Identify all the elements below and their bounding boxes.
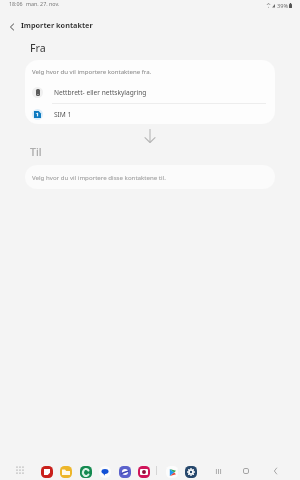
button[interactable]: Phone (79, 465, 93, 479)
staticText: Velg hvor du vil importere kontaktene fr… (32, 67, 152, 75)
staticText: SIM 1 (54, 110, 72, 119)
staticText: man. 27. nov. (26, 0, 60, 7)
button[interactable]: My Files (59, 465, 73, 479)
button[interactable]: All apps (13, 463, 27, 477)
staticText: Til (30, 145, 42, 159)
button[interactable]: Home (237, 462, 255, 480)
staticText: 18:06 (9, 0, 23, 7)
button[interactable]: Velg hvor du vil importere disse kontakt… (25, 165, 275, 189)
button[interactable]: Nettbrett- eller nettskylagring (25, 82, 275, 103)
staticText: Fra (30, 41, 46, 55)
button[interactable]: Back (3, 18, 21, 36)
button[interactable]: Instagram (137, 465, 151, 479)
button[interactable]: Internet (118, 465, 132, 479)
staticText: Velg hvor du vil importere disse kontakt… (32, 173, 166, 181)
button[interactable]: Documents (40, 465, 54, 479)
button[interactable]: Settings (184, 465, 198, 479)
staticText: 39% (277, 2, 289, 8)
button[interactable]: Back (266, 462, 284, 480)
staticText: Nettbrett- eller nettskylagring (54, 88, 147, 97)
button[interactable]: SIM 1 (25, 104, 275, 124)
button[interactable]: Play Store (165, 465, 179, 479)
button[interactable]: Recents (209, 462, 227, 480)
staticText: Importer kontakter (21, 20, 93, 30)
button[interactable]: Messenger (98, 465, 112, 479)
